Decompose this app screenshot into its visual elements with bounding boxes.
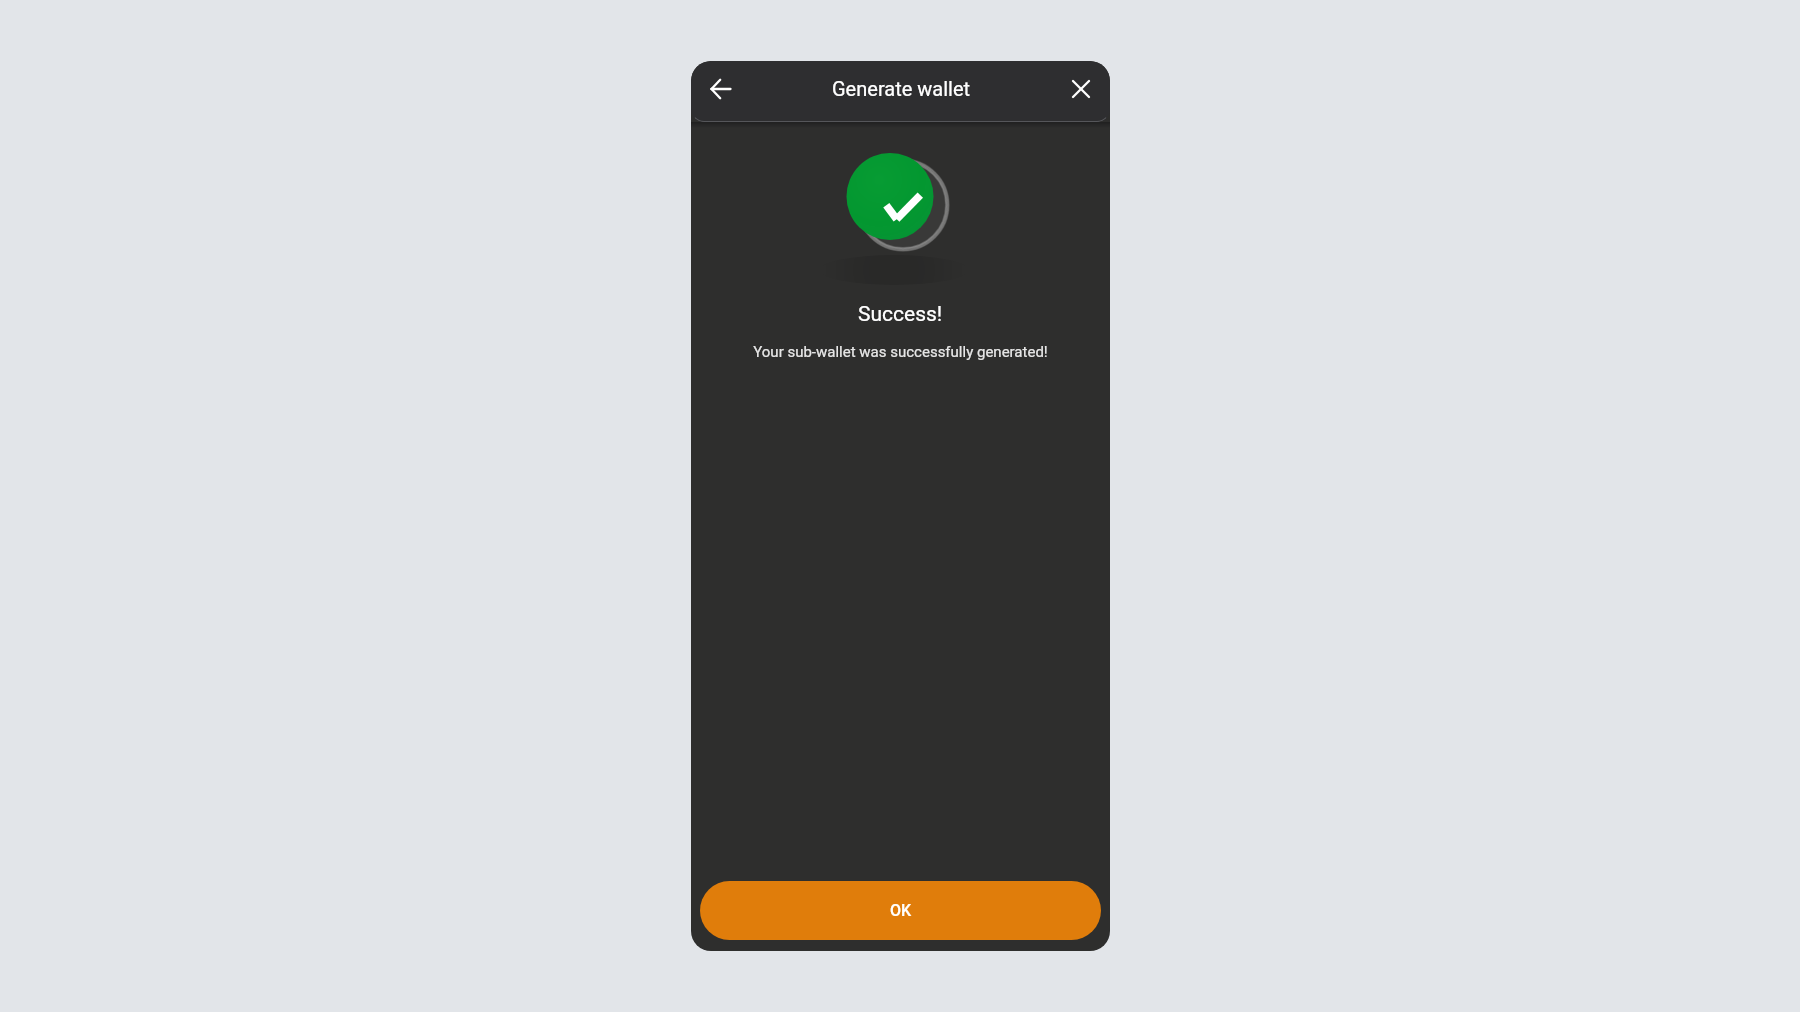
staticText: Generate wallet [832,77,971,100]
staticText: Your sub-wallet was successfully generat… [753,343,1048,361]
staticText: OK [890,901,912,920]
button[interactable]: OK [700,881,1101,940]
staticText: Success! [858,302,943,327]
button[interactable]: Close [1063,71,1099,107]
button[interactable]: Back [703,71,739,107]
